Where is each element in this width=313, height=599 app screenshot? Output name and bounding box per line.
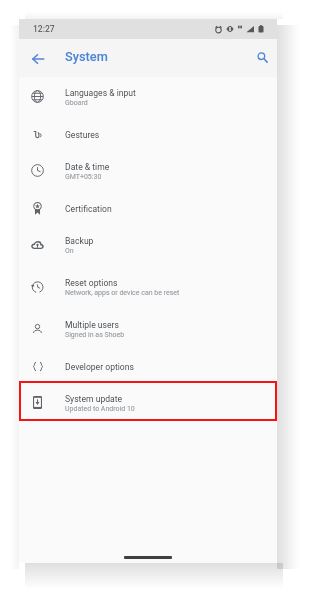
staticText: Certification: [65, 204, 112, 214]
staticText: System: [65, 49, 108, 64]
staticText: Reset options: [65, 278, 118, 288]
button[interactable]: Gestures: [19, 119, 277, 151]
staticText: Date & time: [65, 162, 110, 172]
staticText: System update: [65, 394, 123, 404]
staticText: Languages & input: [65, 88, 136, 98]
staticText: Backup: [65, 236, 94, 246]
staticText: Updated to Android 10: [65, 405, 135, 413]
button[interactable]: Languages & input: [19, 77, 277, 119]
staticText: Signed in as Shoeb: [65, 331, 125, 339]
button[interactable]: Multiple users: [19, 309, 277, 351]
staticText: On: [65, 247, 74, 255]
staticText: Developer options: [65, 362, 134, 372]
staticText: Network, apps or device can be reset: [65, 289, 180, 297]
staticText: 12:27: [33, 24, 55, 34]
button[interactable]: Date & time: [19, 151, 277, 193]
button[interactable]: System update: [19, 383, 277, 425]
button[interactable]: Backup: [19, 225, 277, 267]
button[interactable]: Search: [253, 48, 272, 67]
staticText: Gestures: [65, 130, 100, 140]
button[interactable]: Certification: [19, 193, 277, 225]
staticText: GMT+05:30: [65, 173, 102, 181]
button[interactable]: Developer options: [19, 351, 277, 383]
button[interactable]: Reset options: [19, 267, 277, 309]
button[interactable]: Back: [28, 49, 47, 68]
staticText: Gboard: [65, 99, 88, 107]
staticText: Multiple users: [65, 320, 119, 330]
